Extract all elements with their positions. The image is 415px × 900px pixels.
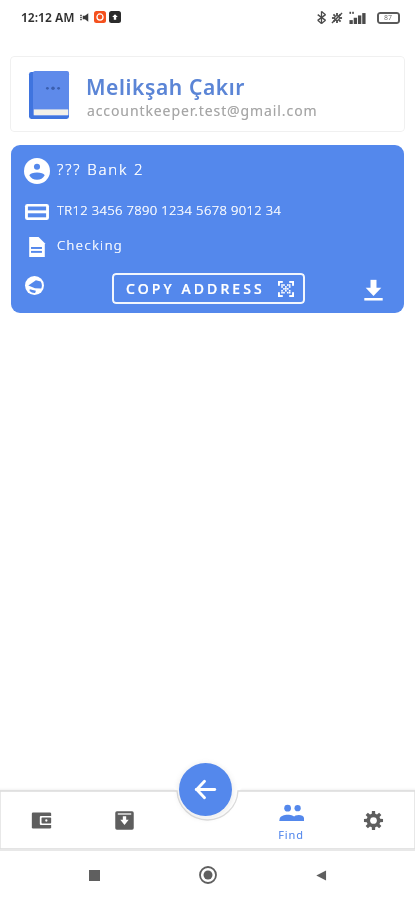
button[interactable]: Archive xyxy=(83,791,166,849)
staticText: TR12 3456 7890 1234 5678 9012 34 xyxy=(57,201,282,219)
button[interactable]: Accounts xyxy=(0,791,83,849)
button[interactable]: Back xyxy=(301,855,341,895)
button[interactable]: Back xyxy=(179,763,232,816)
button[interactable]: COPY ADDRESS xyxy=(112,273,305,304)
staticText: ??? Bank 2 xyxy=(57,159,145,179)
button[interactable]: Recents xyxy=(74,855,114,895)
staticText: Melikşah Çakır xyxy=(86,73,246,102)
staticText: Find xyxy=(278,827,304,842)
staticText: COPY ADDRESS xyxy=(126,279,265,298)
button[interactable]: ??? Bank 2 xyxy=(11,145,404,313)
staticText: Checking xyxy=(57,236,124,254)
button[interactable]: Melikşah Çakır xyxy=(10,56,405,132)
button[interactable]: Download xyxy=(356,272,390,306)
button[interactable]: Home xyxy=(188,855,228,895)
staticText: 87 xyxy=(384,13,393,23)
staticText: 12:12 AM xyxy=(21,9,75,25)
button[interactable]: Settings xyxy=(332,791,415,849)
staticText: accountkeeper.test@gmail.com xyxy=(87,101,318,120)
button[interactable]: Find xyxy=(249,791,332,849)
